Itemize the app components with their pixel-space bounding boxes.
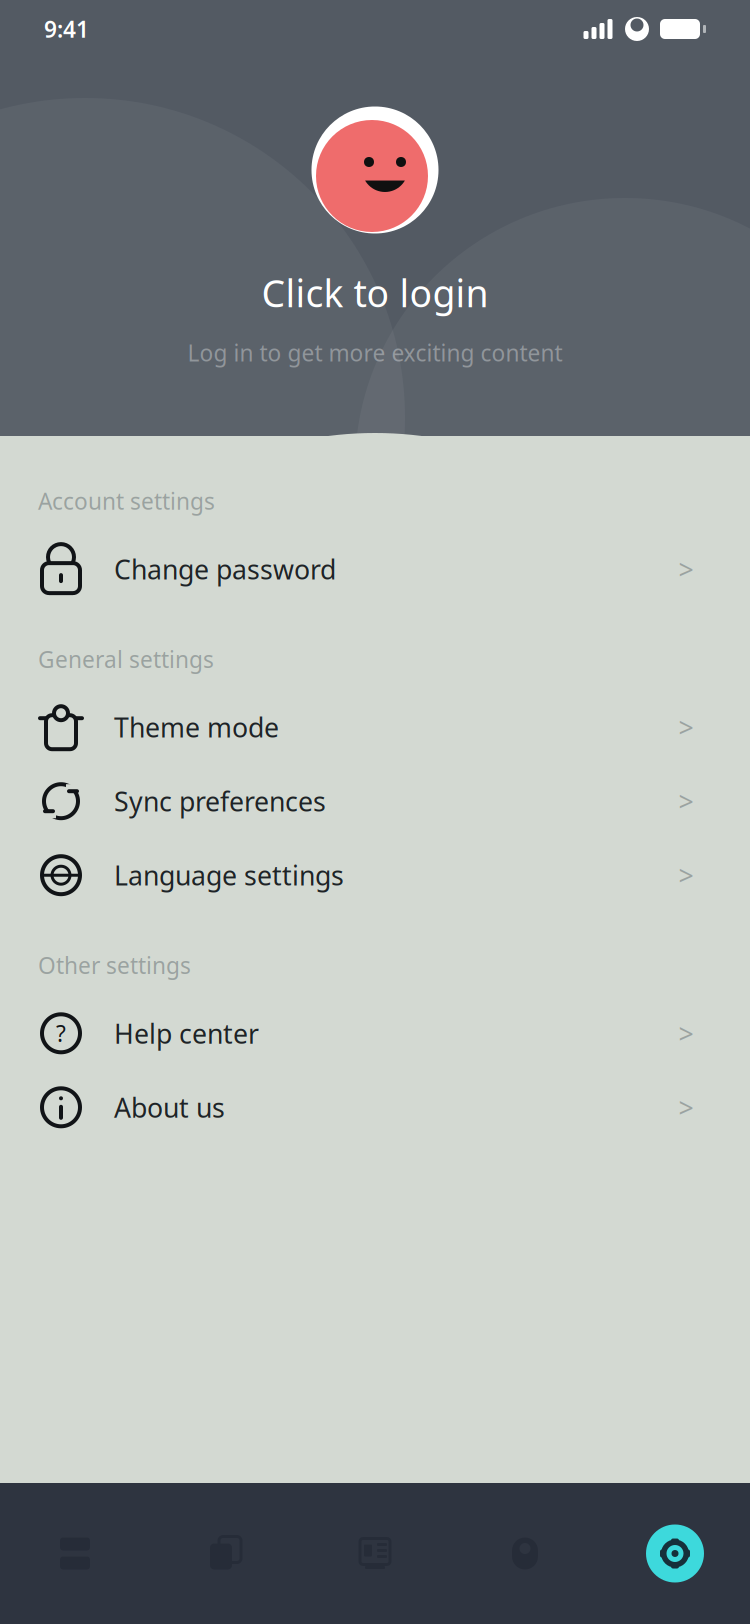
staticText: ? <box>56 1018 66 1048</box>
staticText: Theme mode <box>114 709 279 745</box>
button[interactable]: Settings <box>600 1483 750 1624</box>
staticText: Account settings <box>38 486 215 516</box>
button[interactable]: Sync preferences <box>0 764 750 838</box>
staticText: Other settings <box>38 950 191 980</box>
staticText: > <box>678 709 693 745</box>
button[interactable]: Change password <box>0 532 750 606</box>
button[interactable]: Language settings <box>0 838 750 912</box>
staticText: > <box>678 857 693 893</box>
staticText: Help center <box>114 1016 259 1051</box>
staticText: Sync preferences <box>114 783 326 819</box>
staticText: About us <box>114 1090 225 1125</box>
button[interactable]: Click to login <box>309 104 441 236</box>
staticText: Change password <box>114 551 336 587</box>
staticText: 9:41 <box>44 14 89 44</box>
staticText: > <box>678 551 693 587</box>
button[interactable]: ? <box>0 996 750 1070</box>
staticText: Click to login <box>261 268 488 318</box>
button[interactable]: Theme mode <box>0 690 750 764</box>
staticText: > <box>678 1016 693 1051</box>
staticText: Language settings <box>114 857 344 893</box>
staticText: > <box>678 783 693 819</box>
button[interactable]: About us <box>0 1070 750 1144</box>
staticText: > <box>678 1090 693 1125</box>
staticText: General settings <box>38 644 214 674</box>
staticText: Log in to get more exciting content <box>187 338 562 368</box>
